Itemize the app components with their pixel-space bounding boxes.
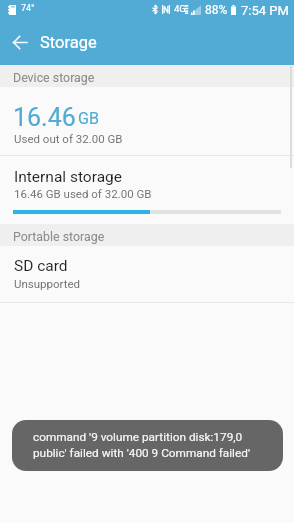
staticText: Unsupported [14, 277, 81, 290]
staticText: public' failed with '400 9 Command faile… [33, 446, 250, 460]
staticText: 88% [205, 3, 228, 17]
button[interactable]: Portable storage [0, 224, 294, 246]
button[interactable]: Back [0, 21, 40, 65]
button[interactable]: Internal storage [0, 156, 294, 224]
staticText: Internal storage [14, 168, 122, 186]
button[interactable]: SD card [0, 246, 294, 302]
staticText: command '9 volume partition disk:179,0 [33, 430, 243, 444]
staticText: Portable storage [13, 229, 105, 244]
staticText: 16.46 [13, 103, 76, 132]
staticText: Used out of 32.00 GB [14, 132, 123, 145]
staticText: 4G [174, 3, 186, 14]
staticText: 74° [21, 3, 35, 14]
staticText: GB [78, 109, 99, 128]
staticText: 7:54 PM [241, 3, 289, 18]
staticText: 16.46 GB used of 32.00 GB [14, 187, 152, 200]
staticText: Device storage [13, 70, 95, 85]
staticText: SD card [14, 257, 68, 275]
staticText: Storage [40, 33, 97, 52]
button[interactable]: 16.46 [0, 87, 294, 155]
button[interactable]: Device storage [0, 65, 294, 87]
